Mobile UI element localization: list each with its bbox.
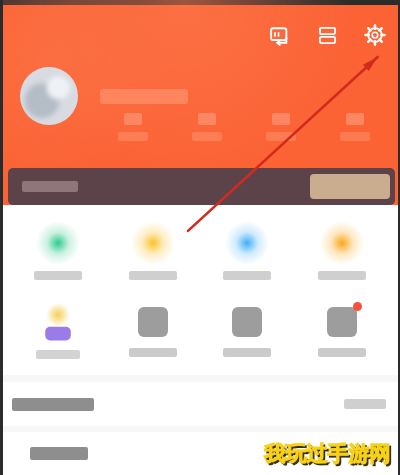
button[interactable] xyxy=(8,168,395,205)
button[interactable] xyxy=(205,223,289,280)
button[interactable]: Settings xyxy=(362,22,388,48)
button[interactable] xyxy=(300,223,384,280)
button[interactable] xyxy=(111,223,195,280)
button[interactable] xyxy=(244,113,318,141)
button[interactable] xyxy=(318,113,392,141)
button[interactable] xyxy=(16,223,100,280)
button[interactable]: Split screen xyxy=(314,22,340,48)
button[interactable] xyxy=(20,67,188,125)
button[interactable] xyxy=(205,302,289,357)
staticText: 我玩过手游网 xyxy=(266,443,392,469)
button[interactable]: Messages xyxy=(266,22,292,48)
staticText: 我玩过手游网 xyxy=(264,441,390,467)
button[interactable] xyxy=(16,302,100,359)
button[interactable] xyxy=(96,113,170,141)
button[interactable] xyxy=(300,302,384,357)
button[interactable] xyxy=(0,432,400,475)
button[interactable] xyxy=(0,382,400,426)
button[interactable] xyxy=(170,113,244,141)
button[interactable] xyxy=(111,302,195,357)
